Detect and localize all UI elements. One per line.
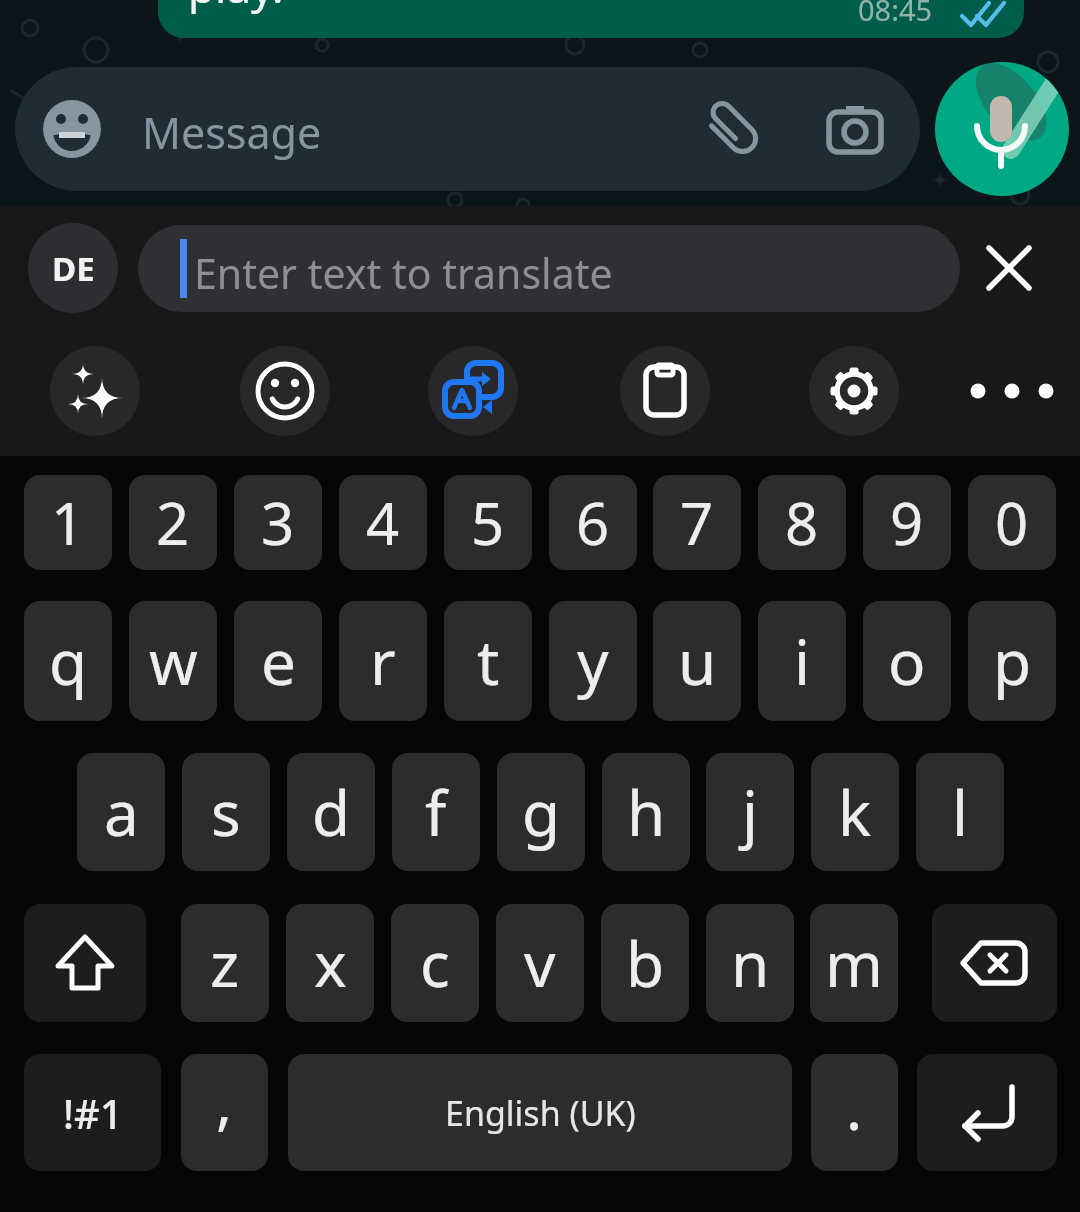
button[interactable] xyxy=(976,235,1042,301)
staticText: z xyxy=(210,921,240,1005)
button[interactable]: r xyxy=(339,601,427,721)
button[interactable] xyxy=(24,904,146,1022)
staticText: x xyxy=(314,921,347,1005)
staticText: m xyxy=(825,921,883,1005)
button[interactable]: p xyxy=(968,601,1056,721)
staticText: 5 xyxy=(471,483,505,562)
button[interactable]: English (UK) xyxy=(288,1054,792,1171)
staticText: i xyxy=(794,619,810,703)
staticText: q xyxy=(49,619,88,703)
staticText: r xyxy=(370,619,396,703)
button[interactable]: 8 xyxy=(758,475,846,570)
button[interactable]: 2 xyxy=(129,475,217,570)
staticText: f xyxy=(425,770,447,854)
button[interactable]: 9 xyxy=(863,475,951,570)
staticText: 0 xyxy=(995,483,1029,562)
button[interactable]: i xyxy=(758,601,846,721)
button[interactable]: 0 xyxy=(968,475,1056,570)
staticText: s xyxy=(211,770,241,854)
button[interactable]: e xyxy=(234,601,322,721)
button[interactable]: w xyxy=(129,601,217,721)
staticText: u xyxy=(678,619,717,703)
staticText: 4 xyxy=(366,483,400,562)
button[interactable]: l xyxy=(916,753,1004,871)
button[interactable]: a xyxy=(77,753,165,871)
button[interactable]: d xyxy=(287,753,375,871)
button[interactable]: o xyxy=(863,601,951,721)
staticText: Message xyxy=(142,103,322,162)
staticText: 8 xyxy=(785,483,819,562)
button[interactable]: h xyxy=(602,753,690,871)
staticText: d xyxy=(312,770,351,854)
staticText: play. xyxy=(188,0,284,16)
button[interactable] xyxy=(240,346,330,436)
button[interactable]: 6 xyxy=(549,475,637,570)
staticText: o xyxy=(888,619,926,703)
button[interactable]: q xyxy=(24,601,112,721)
staticText: y xyxy=(577,619,609,703)
button[interactable]: 4 xyxy=(339,475,427,570)
staticText: 6 xyxy=(576,483,610,562)
button[interactable]: v xyxy=(496,904,584,1022)
staticText: 1 xyxy=(51,483,85,562)
staticText: e xyxy=(261,619,296,703)
staticText: n xyxy=(731,921,770,1005)
staticText: t xyxy=(477,619,500,703)
staticText: c xyxy=(420,921,450,1005)
button[interactable]: 5 xyxy=(444,475,532,570)
staticText: g xyxy=(522,770,561,854)
staticText: j xyxy=(742,770,758,854)
button[interactable]: !#1 xyxy=(24,1054,161,1171)
button[interactable]: Enter text to translate xyxy=(138,225,960,312)
button[interactable]: m xyxy=(810,904,898,1022)
button[interactable]: 3 xyxy=(234,475,322,570)
button[interactable] xyxy=(809,346,899,436)
button[interactable]: 1 xyxy=(24,475,112,570)
button[interactable]: . xyxy=(811,1054,898,1171)
button[interactable] xyxy=(428,346,518,436)
button[interactable]: u xyxy=(653,601,741,721)
staticText: 08:45 xyxy=(858,0,933,29)
staticText: 9 xyxy=(890,483,924,562)
staticText: k xyxy=(838,770,872,854)
staticText: DE xyxy=(52,246,95,291)
button[interactable]: g xyxy=(497,753,585,871)
button[interactable]: 7 xyxy=(653,475,741,570)
button[interactable]: Message xyxy=(15,67,920,191)
button[interactable]: y xyxy=(549,601,637,721)
staticText: p xyxy=(993,619,1032,703)
staticText: English (UK) xyxy=(445,1090,636,1136)
button[interactable]: x xyxy=(286,904,374,1022)
button[interactable] xyxy=(967,346,1057,436)
button[interactable] xyxy=(935,62,1069,196)
staticText: !#1 xyxy=(63,1086,123,1140)
button[interactable]: t xyxy=(444,601,532,721)
staticText: h xyxy=(627,770,666,854)
staticText: v xyxy=(524,921,556,1005)
staticText: 7 xyxy=(680,483,714,562)
button[interactable] xyxy=(620,346,710,436)
button[interactable]: j xyxy=(706,753,794,871)
button[interactable]: s xyxy=(182,753,270,871)
staticText: b xyxy=(626,921,665,1005)
button[interactable] xyxy=(932,904,1057,1022)
button[interactable]: , xyxy=(181,1054,268,1171)
staticText: w xyxy=(149,619,198,703)
button[interactable]: DE xyxy=(28,223,118,313)
staticText: 3 xyxy=(261,483,295,562)
staticText: l xyxy=(952,770,968,854)
button[interactable]: f xyxy=(392,753,480,871)
button[interactable]: z xyxy=(181,904,269,1022)
button[interactable]: k xyxy=(811,753,899,871)
staticText: Enter text to translate xyxy=(194,245,613,301)
staticText: 2 xyxy=(156,483,190,562)
button[interactable]: n xyxy=(706,904,794,1022)
button[interactable]: c xyxy=(391,904,479,1022)
button[interactable]: b xyxy=(601,904,689,1022)
staticText: , xyxy=(216,1060,233,1142)
staticText: . xyxy=(846,1066,863,1148)
button[interactable] xyxy=(50,346,140,436)
staticText: a xyxy=(104,770,139,854)
button[interactable] xyxy=(917,1054,1057,1171)
